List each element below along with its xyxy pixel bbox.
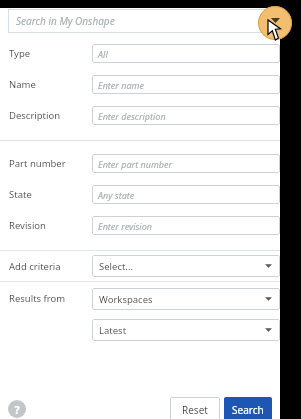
- staticText: All: [98, 48, 108, 60]
- staticText: Search: [232, 403, 264, 417]
- button[interactable]: Search in My Onshape: [8, 9, 272, 33]
- staticText: Results from: [9, 292, 66, 305]
- staticText: ?: [14, 402, 20, 417]
- button[interactable]: Reset: [170, 397, 220, 419]
- staticText: Any state: [98, 189, 135, 201]
- staticText: Name: [9, 78, 36, 91]
- staticText: Latest: [99, 324, 127, 337]
- staticText: State: [9, 188, 32, 201]
- staticText: Select...: [99, 260, 134, 273]
- staticText: Enter description: [98, 110, 166, 122]
- button[interactable]: Enter name: [92, 75, 280, 94]
- staticText: Search in My Onshape: [16, 14, 115, 28]
- button[interactable]: Enter description: [92, 106, 280, 125]
- button[interactable]: All: [92, 44, 280, 63]
- staticText: Enter name: [98, 79, 144, 91]
- staticText: Add criteria: [9, 260, 61, 273]
- button[interactable]: Search: [224, 397, 272, 419]
- staticText: Revision: [9, 219, 46, 232]
- staticText: Reset: [182, 403, 208, 417]
- button[interactable]: Enter part number: [92, 154, 280, 173]
- staticText: Type: [9, 47, 31, 60]
- button[interactable]: Select...: [92, 255, 280, 277]
- staticText: Enter part number: [98, 158, 173, 170]
- staticText: Description: [9, 109, 61, 122]
- button[interactable]: Advanced search options: [258, 6, 292, 40]
- staticText: Part number: [9, 157, 66, 170]
- button[interactable]: Workspaces: [92, 288, 280, 310]
- button[interactable]: Enter revision: [92, 216, 280, 235]
- button[interactable]: Latest: [92, 319, 280, 341]
- staticText: Workspaces: [99, 293, 153, 306]
- button[interactable]: Help: [8, 400, 26, 418]
- button[interactable]: Any state: [92, 185, 280, 204]
- staticText: Enter revision: [98, 220, 152, 232]
